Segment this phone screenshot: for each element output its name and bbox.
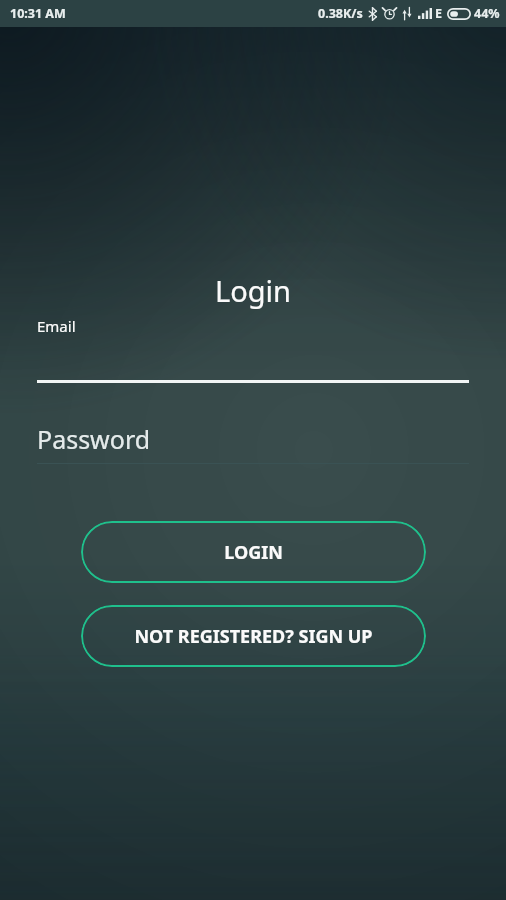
button[interactable]: Email bbox=[0, 316, 506, 383]
staticText: 44% bbox=[474, 5, 500, 22]
staticText: LOGIN bbox=[224, 540, 283, 565]
staticText: Login bbox=[0, 271, 506, 310]
staticText: 0.38K/s bbox=[318, 5, 363, 22]
button[interactable]: LOGIN bbox=[81, 521, 426, 583]
staticText: 10:31 AM bbox=[10, 5, 66, 22]
staticText: E bbox=[435, 5, 443, 22]
staticText: Email bbox=[37, 316, 76, 336]
button[interactable]: Password bbox=[0, 422, 506, 464]
button[interactable]: NOT REGISTERED? SIGN UP bbox=[81, 605, 426, 667]
staticText: NOT REGISTERED? SIGN UP bbox=[134, 624, 373, 649]
staticText: Password bbox=[37, 422, 151, 456]
